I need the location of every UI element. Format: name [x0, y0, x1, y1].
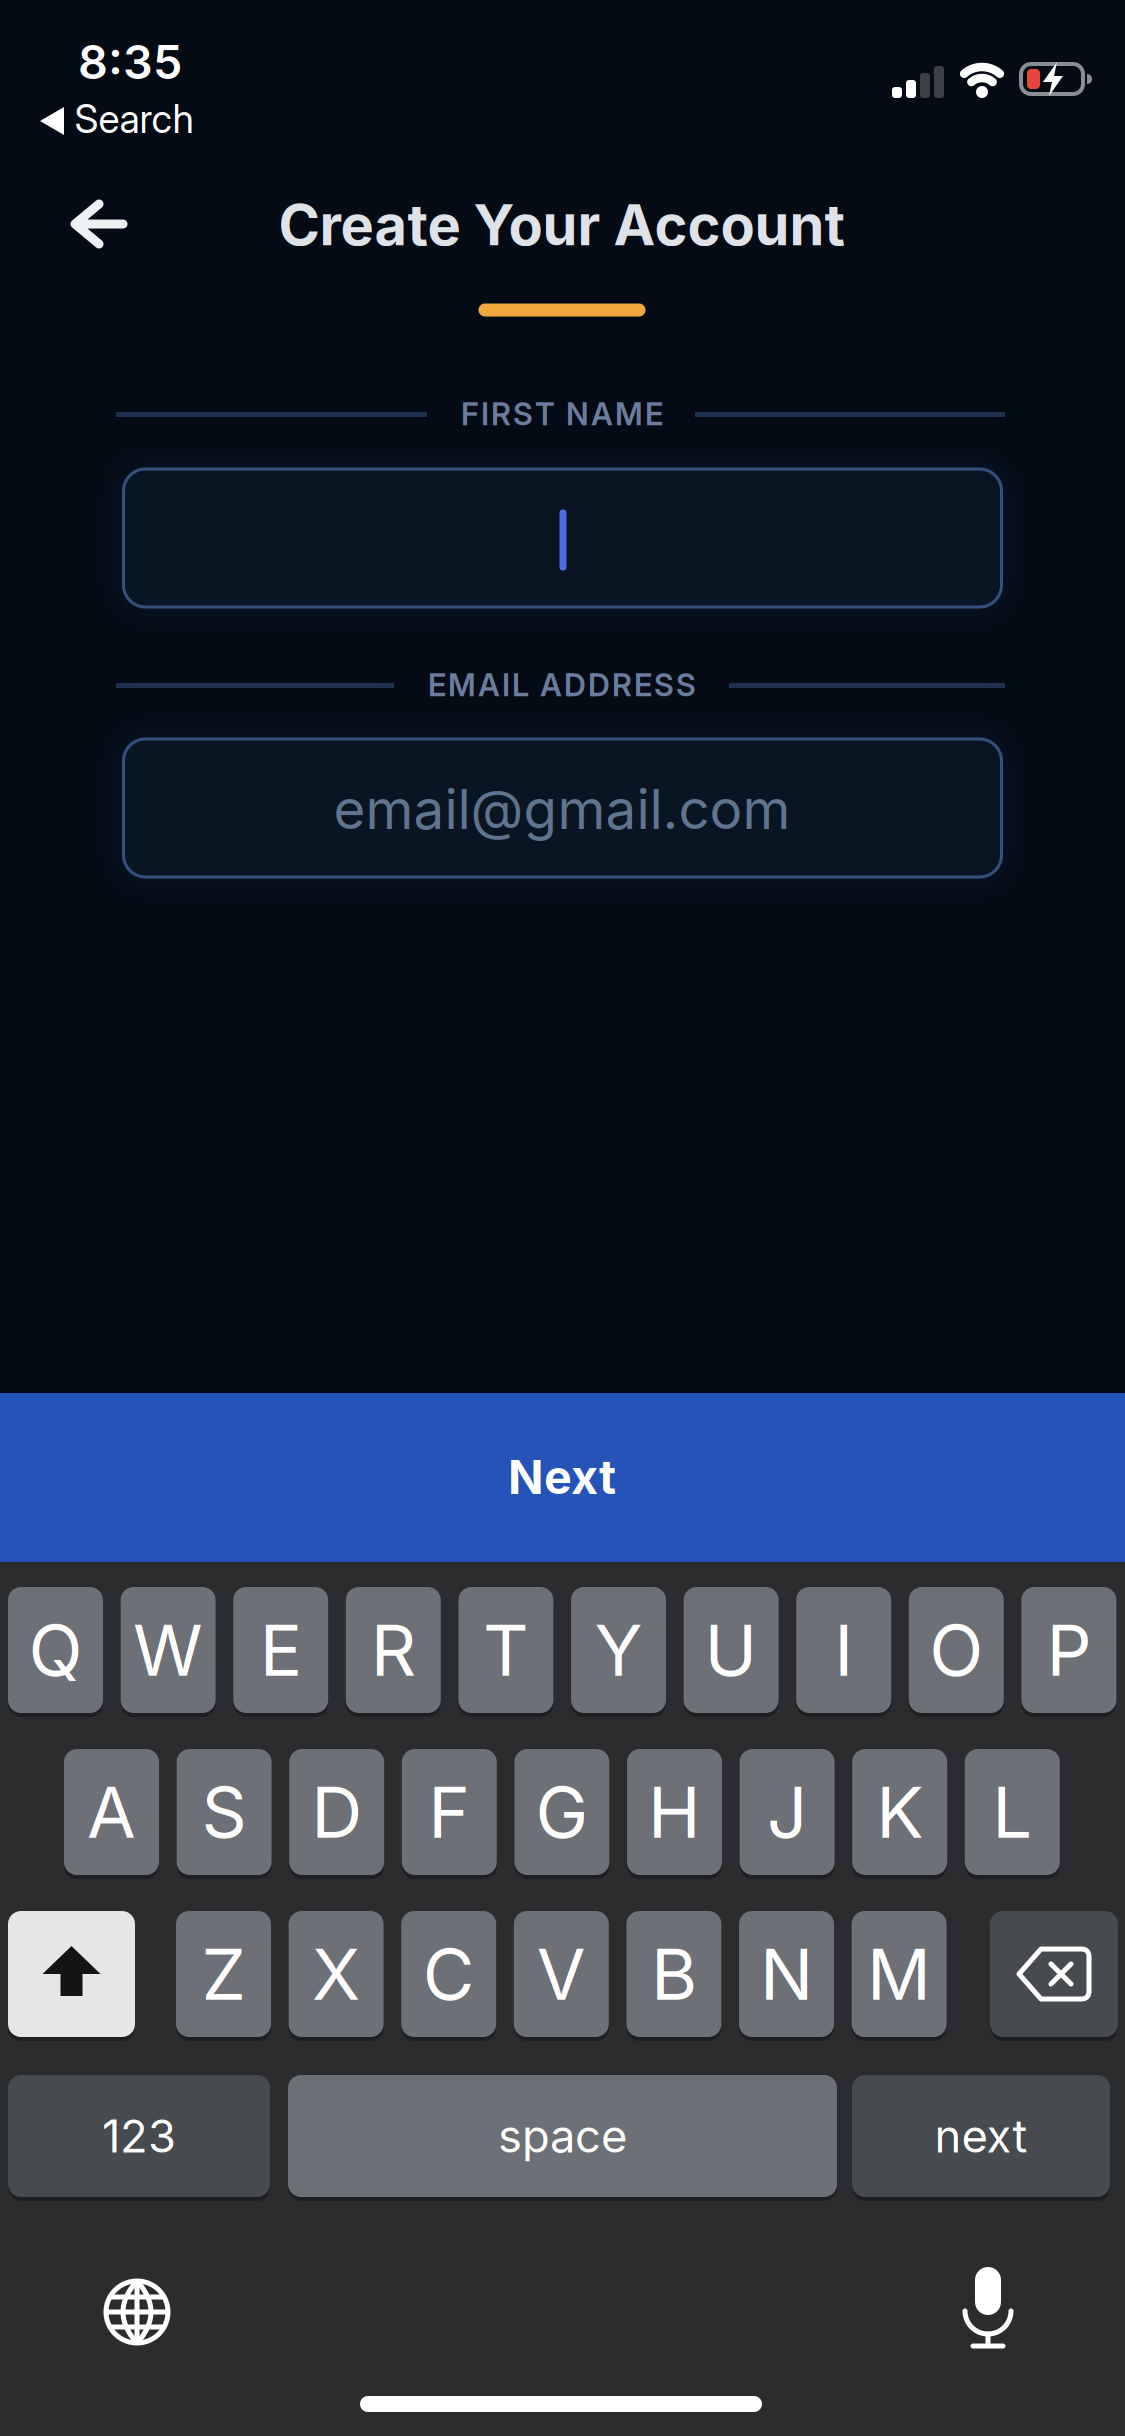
staticText: 8:35	[78, 34, 182, 90]
staticText: K	[876, 1770, 923, 1854]
staticText: W	[133, 1608, 203, 1692]
staticText: next	[934, 2109, 1027, 2163]
staticText: F	[428, 1770, 470, 1854]
staticText: E	[260, 1608, 302, 1692]
staticText: G	[535, 1770, 588, 1854]
staticText: V	[537, 1932, 586, 2016]
staticText: N	[760, 1932, 813, 2016]
staticText: D	[311, 1770, 362, 1854]
staticText: 123	[102, 2109, 176, 2163]
staticText: Next	[508, 1449, 616, 1505]
staticText: Y	[594, 1608, 642, 1692]
staticText: email@gmail.com	[333, 777, 790, 841]
staticText: C	[423, 1932, 475, 2016]
staticText: Create Your Account	[278, 192, 845, 258]
staticText: U	[705, 1608, 758, 1692]
staticText: P	[1046, 1608, 1091, 1692]
staticText: Z	[201, 1932, 245, 2016]
staticText: R	[371, 1608, 416, 1692]
staticText: O	[929, 1608, 983, 1692]
staticText: B	[651, 1932, 697, 2016]
staticText: A	[87, 1770, 136, 1854]
staticText: Search	[74, 96, 193, 142]
staticText: E M A I L A D D R E S S	[428, 667, 696, 703]
staticText: F I R S T N A M E	[461, 396, 663, 432]
staticText: M	[867, 1932, 931, 2016]
staticText: S	[202, 1770, 247, 1854]
staticText: Q	[28, 1608, 82, 1692]
staticText: J	[767, 1770, 807, 1854]
staticText: space	[498, 2109, 627, 2163]
staticText: L	[992, 1770, 1032, 1854]
staticText: X	[312, 1932, 360, 2016]
staticText: T	[483, 1608, 529, 1692]
staticText: I	[834, 1608, 853, 1692]
staticText: H	[648, 1770, 701, 1854]
